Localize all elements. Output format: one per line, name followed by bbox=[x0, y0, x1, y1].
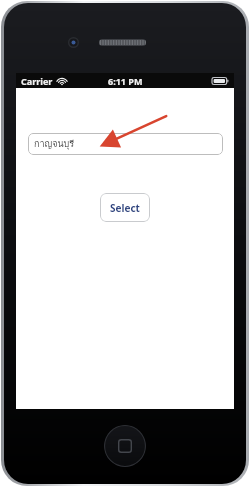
button[interactable]: Home bbox=[104, 425, 146, 467]
staticText: กาญจนบุรี bbox=[34, 137, 75, 151]
staticText: Select bbox=[110, 201, 140, 215]
button[interactable]: Select bbox=[100, 193, 150, 222]
staticText: Carrier bbox=[21, 75, 53, 87]
button[interactable]: กาญจนบุรี bbox=[28, 133, 223, 155]
staticText: 6:11 PM bbox=[108, 75, 143, 87]
